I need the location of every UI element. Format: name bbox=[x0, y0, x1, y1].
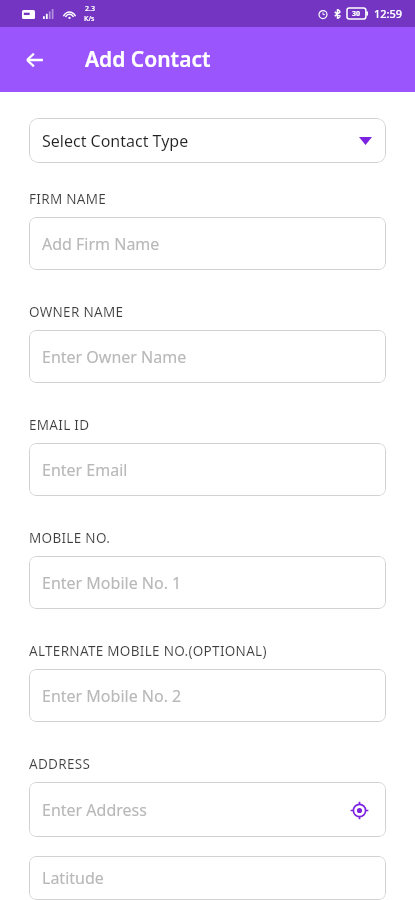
staticText: MOBILE NO. bbox=[29, 529, 111, 547]
staticText: ADDRESS bbox=[29, 755, 91, 773]
staticText: Enter Email bbox=[42, 459, 128, 481]
staticText: Enter Address bbox=[42, 799, 346, 821]
button[interactable]: Back bbox=[14, 39, 56, 81]
staticText: Select Contact Type bbox=[42, 130, 359, 152]
button[interactable]: Enter Address bbox=[29, 782, 386, 837]
staticText: FIRM NAME bbox=[29, 190, 107, 208]
staticText: Latitude bbox=[42, 867, 104, 889]
staticText: Enter Owner Name bbox=[42, 346, 187, 368]
button[interactable]: Enter Email bbox=[29, 443, 386, 496]
staticText: Add Firm Name bbox=[42, 233, 160, 255]
staticText: 12:59 bbox=[374, 6, 403, 21]
button[interactable]: Add Firm Name bbox=[29, 217, 386, 270]
button[interactable]: Use current location bbox=[346, 797, 372, 823]
staticText: 30 bbox=[352, 9, 361, 19]
staticText: ALTERNATE MOBILE NO.(OPTIONAL) bbox=[29, 642, 267, 660]
button[interactable]: Enter Mobile No. 2 bbox=[29, 669, 386, 722]
button[interactable]: Enter Owner Name bbox=[29, 330, 386, 383]
button[interactable]: Select Contact Type bbox=[29, 118, 386, 163]
staticText: K/s bbox=[84, 14, 95, 24]
staticText: Enter Mobile No. 2 bbox=[42, 685, 182, 707]
button[interactable]: Latitude bbox=[29, 856, 386, 900]
staticText: Enter Mobile No. 1 bbox=[42, 572, 182, 594]
staticText: 2.3 bbox=[85, 4, 95, 14]
staticText: EMAIL ID bbox=[29, 416, 90, 434]
staticText: OWNER NAME bbox=[29, 303, 124, 321]
staticText: Add Contact bbox=[85, 45, 211, 74]
button[interactable]: Enter Mobile No. 1 bbox=[29, 556, 386, 609]
